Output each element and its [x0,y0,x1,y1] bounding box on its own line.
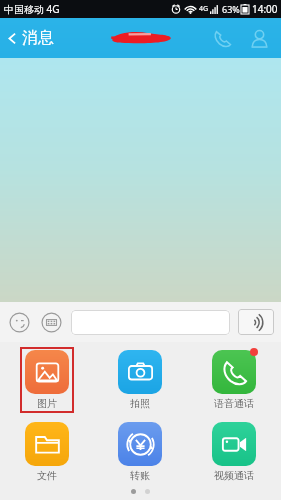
staticText: 中国移动 4G [4,2,60,16]
button[interactable]: Keyboard [39,310,64,335]
button[interactable]: Contact profile [244,23,275,54]
button[interactable]: 消息 [0,24,62,52]
button[interactable]: 拍照 [113,347,167,413]
staticText: 4G [199,4,209,14]
staticText: 消息 [22,28,54,48]
staticText: 语音通话 [214,397,254,410]
button[interactable]: Voice message [238,309,274,335]
staticText: 14:00 [252,2,278,16]
button[interactable] [71,310,230,335]
staticText: 拍照 [130,397,150,410]
staticText: 文件 [37,469,57,482]
button[interactable]: 文件 [20,419,74,485]
staticText: 图片 [37,397,57,410]
button[interactable]: 图片 [20,347,74,413]
button[interactable]: 语音通话 [207,347,261,413]
staticText: 转账 [130,469,150,482]
button[interactable]: Emoji [7,310,32,335]
button[interactable]: 视频通话 [207,419,261,485]
staticText: 视频通话 [214,469,254,482]
staticText: 63% [222,3,240,15]
button[interactable]: 转账 [113,419,167,485]
button[interactable]: Call [207,23,238,54]
